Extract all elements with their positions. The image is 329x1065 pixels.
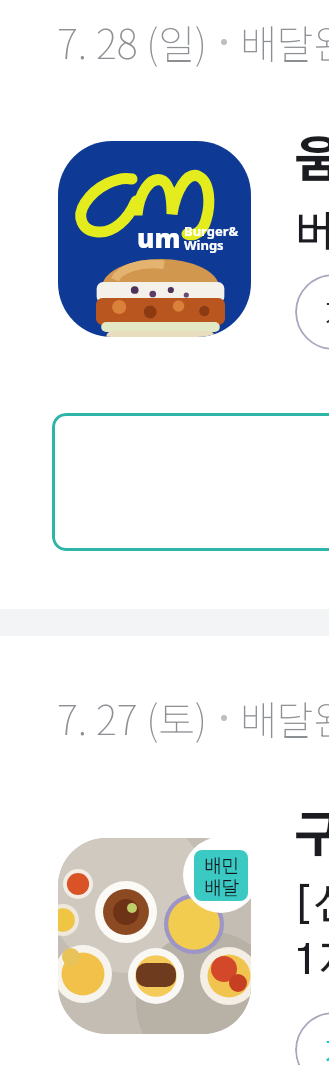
button[interactable] <box>52 413 329 551</box>
staticText: 7. 27 (토) <box>57 689 208 747</box>
staticText: 버거세트 외 1개 <box>294 212 329 254</box>
button[interactable]: 재주문하기 <box>295 274 329 350</box>
staticText: [신규] 한상차림 <box>294 885 329 927</box>
staticText: 배민 배달 <box>204 851 239 900</box>
staticText: 배달완료 <box>240 13 329 71</box>
staticText: 1개 <box>294 940 329 982</box>
staticText: 배달완료 <box>240 689 329 747</box>
button[interactable]: 움쨍이버거 store logo <box>58 141 251 337</box>
staticText: 7. 28 (일) <box>57 13 208 71</box>
staticText: 재주문하기 <box>325 288 329 337</box>
staticText: um <box>137 220 181 255</box>
button[interactable]: 재주문하기 <box>295 1012 329 1065</box>
staticText: 움쨍이버거 천호점 <box>294 139 329 187</box>
staticText: 재주문하기 <box>325 1026 329 1065</box>
staticText: Burger& Wings <box>184 222 239 254</box>
button[interactable]: 구씨의 만두전골 <box>294 814 329 862</box>
staticText: 구씨의 만두전골 <box>294 814 329 862</box>
button[interactable]: 구씨의 만두전골 order photo <box>58 838 251 1034</box>
button[interactable]: 움쨍이버거 천호점 <box>294 139 329 187</box>
